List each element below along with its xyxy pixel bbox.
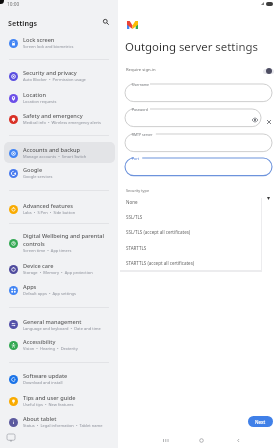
staticText: Download and install — [23, 380, 63, 385]
staticText: Next — [255, 419, 266, 425]
staticText: Labs • S Pen • Side button — [23, 210, 76, 215]
staticText: Device care — [23, 262, 54, 270]
button[interactable] — [125, 109, 261, 127]
staticText: Tips and user guide — [23, 394, 76, 402]
staticText: Software update — [23, 372, 68, 380]
staticText: SSL/TLS — [126, 214, 143, 220]
staticText: Safety and emergency — [23, 112, 83, 120]
staticText: Lock screen — [23, 36, 55, 44]
staticText: Outgoing server settings — [125, 39, 258, 55]
staticText: SMTP server — [132, 132, 153, 137]
staticText: Settings — [8, 18, 38, 28]
button[interactable] — [4, 280, 115, 301]
button[interactable]: STARTTLS (accept all certificates) — [119, 255, 261, 270]
staticText: Accounts and backup — [23, 146, 81, 154]
button[interactable]: Back — [230, 432, 246, 448]
staticText: General management — [23, 318, 82, 326]
staticText: Manage accounts • Smart Switch — [23, 154, 87, 159]
button[interactable] — [4, 314, 115, 335]
staticText: SSL/TLS (accept all certificates) — [126, 229, 191, 235]
staticText: None — [126, 199, 138, 205]
button[interactable]: Search — [100, 16, 112, 28]
button[interactable]: Show password — [250, 115, 259, 124]
staticText: Medical info • Wireless emergency alerts — [23, 120, 101, 125]
button[interactable]: None — [119, 194, 261, 209]
staticText: Require sign-in — [126, 67, 156, 73]
button[interactable] — [4, 162, 115, 183]
button[interactable]: Clear — [264, 117, 273, 126]
staticText: 10:00 — [7, 1, 20, 8]
staticText: Auto Blocker • Permission usage — [23, 77, 86, 82]
staticText: Location — [23, 91, 46, 99]
staticText: Status • Legal information • Tablet name — [23, 423, 103, 428]
staticText: Default apps • App settings — [23, 291, 76, 296]
staticText: STARTTLS — [126, 245, 147, 251]
staticText: Password — [132, 107, 148, 112]
staticText: Google services — [23, 174, 53, 179]
button[interactable] — [4, 87, 115, 108]
staticText: Useful tips • New features — [23, 402, 74, 407]
button[interactable] — [4, 142, 115, 163]
staticText: Username — [132, 82, 150, 87]
button[interactable] — [4, 229, 115, 258]
button[interactable] — [125, 84, 272, 102]
button[interactable]: SSL/TLS — [119, 209, 261, 224]
button[interactable]: STARTTLS — [119, 240, 261, 255]
button[interactable] — [4, 109, 115, 130]
staticText: Port — [132, 156, 139, 161]
button[interactable] — [4, 390, 115, 411]
staticText: Security type — [126, 188, 150, 193]
button[interactable] — [125, 134, 272, 152]
staticText: STARTTLS (accept all certificates) — [126, 260, 195, 266]
button[interactable]: Require sign-in toggle — [260, 64, 276, 78]
staticText: About tablet — [23, 415, 57, 423]
staticText: Screen lock and biometrics — [23, 44, 74, 49]
staticText: Language and keyboard • Date and time — [23, 326, 101, 331]
staticText: Advanced features — [23, 202, 73, 210]
staticText: Digital Wellbeing and parental controls — [23, 232, 118, 248]
staticText: Security and privacy — [23, 69, 77, 77]
button[interactable]: Expand security type — [264, 194, 272, 202]
button[interactable] — [4, 32, 115, 53]
staticText: Apps — [23, 283, 37, 291]
button[interactable] — [125, 158, 272, 176]
staticText: Vision • Hearing • Dexterity — [23, 346, 78, 351]
button[interactable]: Home — [193, 432, 209, 448]
button[interactable] — [4, 368, 115, 389]
button[interactable]: SSL/TLS (accept all certificates) — [119, 224, 261, 239]
button[interactable] — [4, 65, 115, 86]
staticText: Storage • Memory • App protection — [23, 270, 93, 275]
button[interactable] — [4, 198, 115, 219]
button[interactable] — [4, 411, 115, 432]
button[interactable]: Recents — [157, 432, 173, 448]
button[interactable]: Next — [248, 416, 273, 427]
button[interactable] — [4, 258, 115, 279]
staticText: Accessibility — [23, 338, 56, 346]
staticText: Google — [23, 166, 43, 174]
staticText: Screen time • App timers — [23, 248, 72, 253]
button[interactable] — [4, 335, 115, 356]
staticText: Location requests — [23, 99, 57, 104]
